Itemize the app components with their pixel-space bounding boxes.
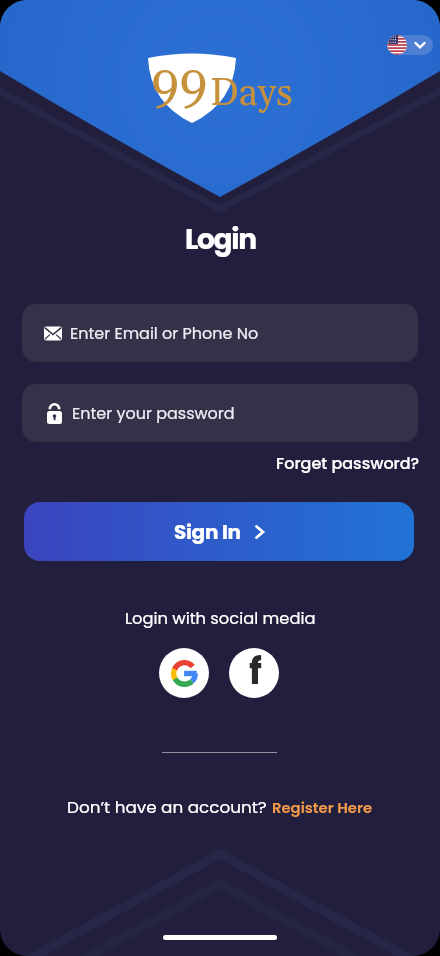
button[interactable]: Register Here <box>272 797 373 818</box>
button[interactable]: Forget password? <box>276 452 420 474</box>
staticText: Days <box>210 70 293 118</box>
staticText: f <box>249 648 262 696</box>
staticText: Enter your password <box>72 402 235 424</box>
button[interactable] <box>159 648 209 698</box>
button[interactable]: Enter your password <box>22 384 418 442</box>
button[interactable]: Sign In <box>24 502 414 561</box>
staticText: Login <box>185 220 256 259</box>
staticText: 99 <box>151 54 208 117</box>
staticText: Sign In <box>174 518 241 546</box>
staticText: Login with social media <box>125 607 316 630</box>
button[interactable]: f <box>229 648 279 698</box>
staticText: Don’t have an account? <box>67 795 272 819</box>
button[interactable]: Enter Email or Phone No <box>22 304 418 362</box>
staticText: Enter Email or Phone No <box>70 322 259 344</box>
button[interactable] <box>387 35 433 55</box>
